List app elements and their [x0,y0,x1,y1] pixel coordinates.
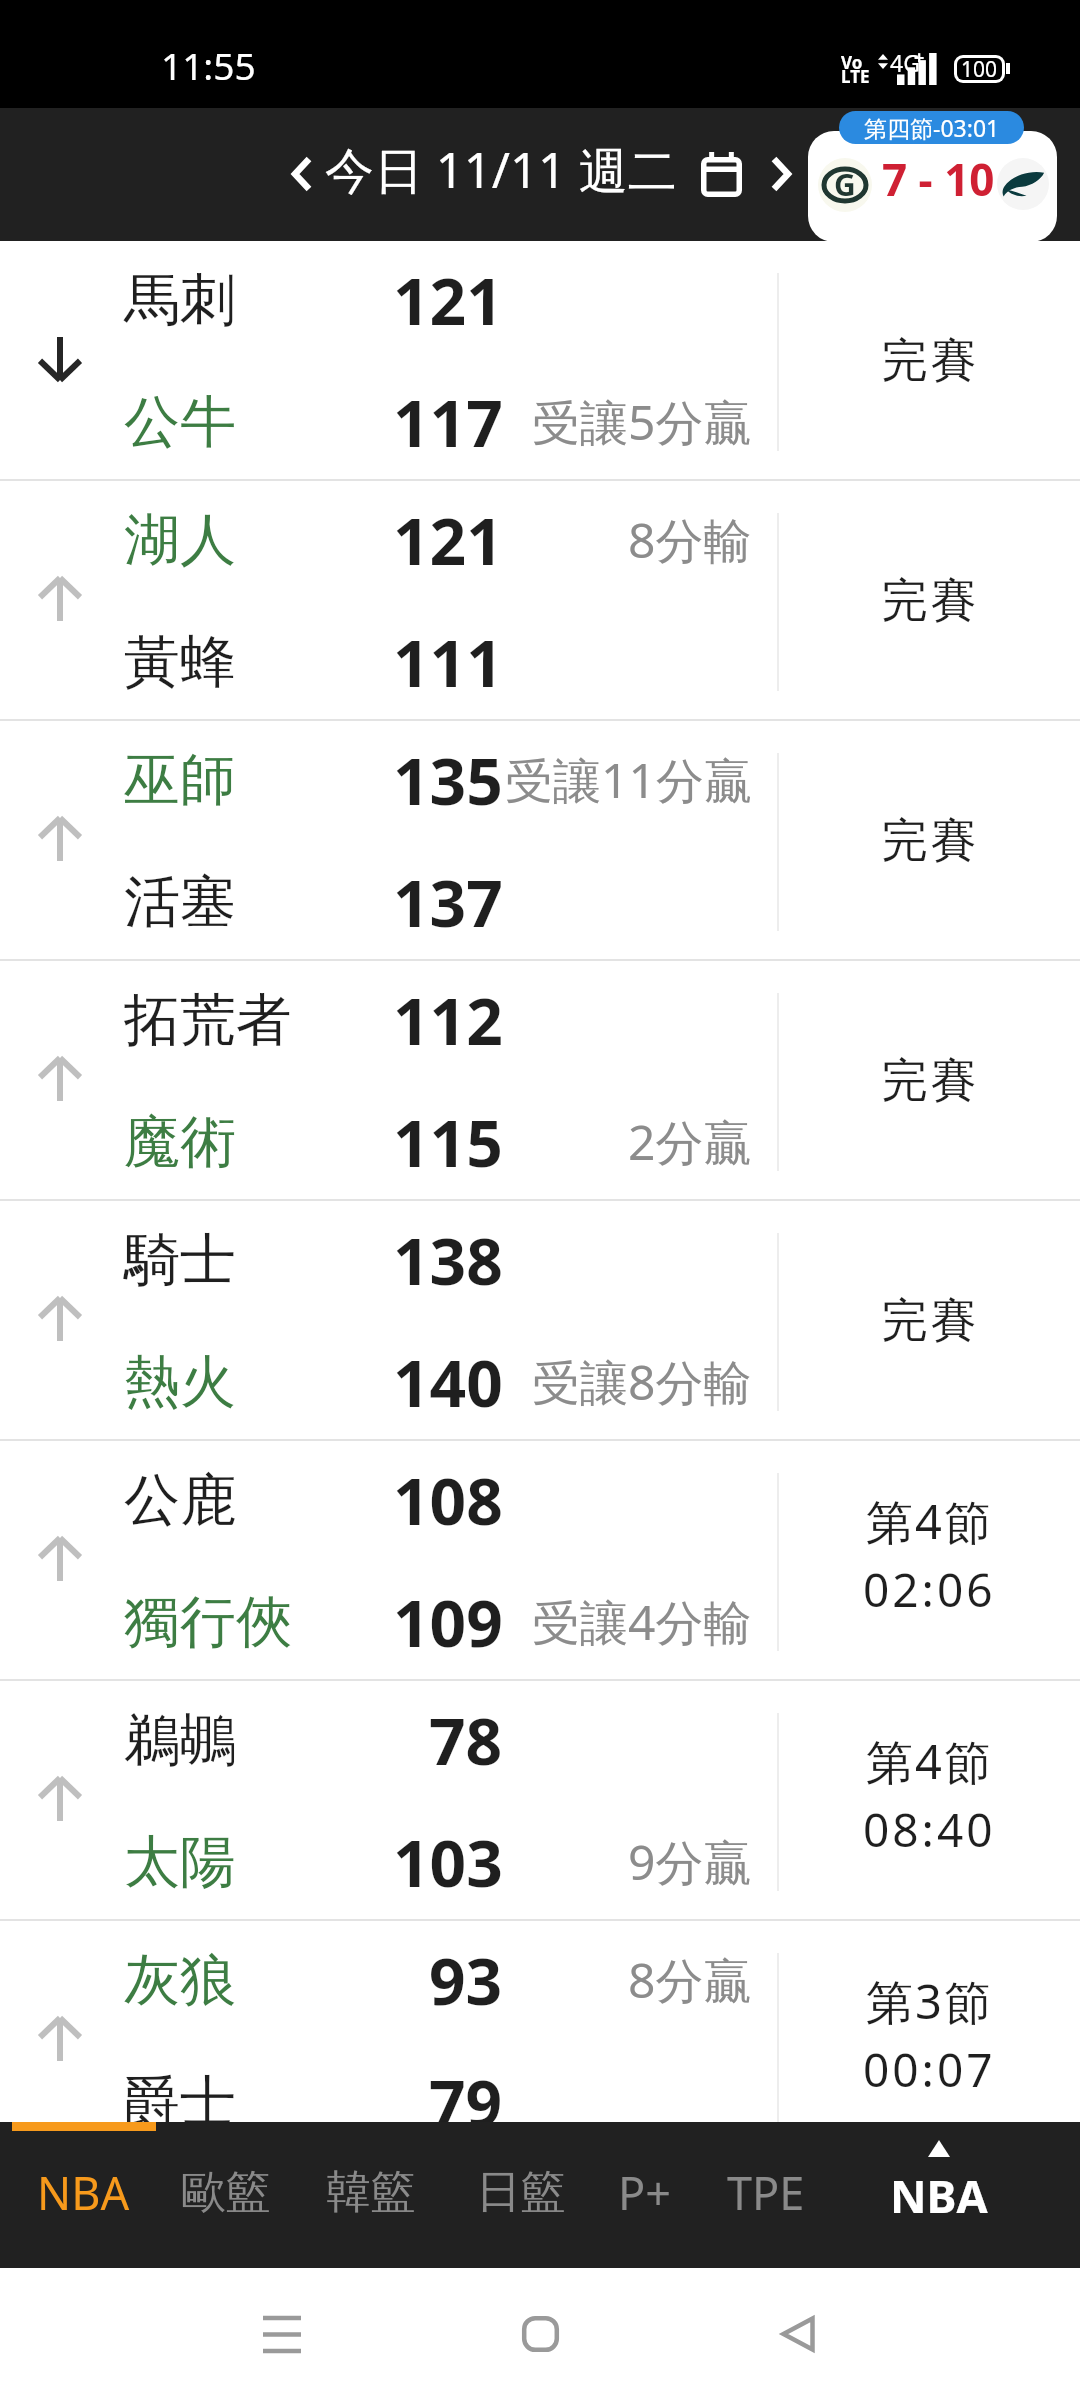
staticText: 湖人 [124,505,236,576]
staticText: 黃蜂 [124,627,236,698]
staticText: 完賽 [880,572,978,630]
staticText: NBA [37,2162,130,2223]
staticText: 8分贏 [628,1947,752,2013]
staticText: 騎士 [124,1225,236,1296]
staticText: 103 [393,1819,503,1895]
button[interactable]: NBA [8,2124,158,2261]
staticText: 第四節-03:01 [864,112,1000,143]
button[interactable]: 公鹿 [0,1441,1080,1679]
staticText: 歐籃 [181,2164,271,2221]
staticText: 受讓5分贏 [532,389,752,455]
staticText: 02:06 [863,1558,996,1621]
button[interactable]: G [808,111,1057,242]
staticText: 93 [429,1937,503,2013]
button[interactable]: Previous day [278,134,326,214]
staticText: 熱火 [124,1347,236,1418]
staticText: LTE [841,65,870,88]
button[interactable]: 馬刺 [0,241,1080,479]
staticText: 爵士 [124,2067,236,2122]
button[interactable]: TPE [701,2124,831,2261]
staticText: 140 [393,1339,503,1415]
staticText: 111 [393,619,503,695]
staticText: 100 [961,58,998,80]
staticText: 受讓8分輸 [532,1349,752,1415]
staticText: 7 - 10 [882,149,995,209]
button[interactable]: 日籃 [451,2124,591,2261]
staticText: 拓荒者 [124,985,292,1056]
staticText: 8分輸 [628,507,752,573]
button[interactable]: 灰狼 [0,1921,1080,2122]
staticText: 138 [393,1217,503,1293]
staticText: 受讓11分贏 [505,747,752,813]
button[interactable]: 拓荒者 [0,961,1080,1199]
staticText: 108 [393,1457,503,1533]
staticText: 巫師 [124,745,236,816]
staticText: 121 [393,497,503,573]
staticText: P+ [618,2162,671,2223]
button[interactable]: 韓籃 [301,2124,441,2261]
staticText: 78 [429,1697,503,1773]
button[interactable]: 鵜鶘 [0,1681,1080,1919]
button[interactable]: 湖人 [0,481,1080,719]
staticText: 112 [393,977,503,1053]
staticText: 11:55 [161,40,256,90]
staticText: Vo [841,51,863,74]
staticText: TPE [727,2162,805,2223]
staticText: 121 [393,257,503,333]
staticText: 79 [429,2059,503,2122]
button[interactable]: Back [738,2274,858,2394]
staticText: 9分贏 [628,1829,752,1895]
staticText: 活塞 [124,867,236,938]
staticText: 第4節 [866,1489,993,1553]
button[interactable]: 歐籃 [156,2124,296,2261]
staticText: + [914,45,925,70]
staticText: 第4節 [866,1729,993,1793]
staticText: 115 [393,1099,503,1175]
staticText: 公牛 [124,387,236,458]
button[interactable]: Home [480,2274,600,2394]
staticText: 公鹿 [124,1465,236,1536]
staticText: 日籃 [476,2164,566,2221]
staticText: 馬刺 [124,265,236,336]
staticText: 4G [890,47,920,78]
staticText: 完賽 [880,1052,978,1110]
staticText: NBA [890,2165,988,2226]
button[interactable]: 巫師 [0,721,1080,959]
staticText: 第3節 [866,1969,993,2033]
button[interactable]: 騎士 [0,1201,1080,1439]
staticText: 韓籃 [326,2164,416,2221]
button[interactable]: NBA [849,2131,1029,2268]
staticText: 受讓4分輸 [532,1589,752,1655]
staticText: 鵜鶘 [124,1705,236,1776]
staticText: 今日 11/11 週二 [325,136,677,203]
staticText: 2分贏 [628,1109,752,1175]
button[interactable]: Next day [757,134,805,214]
button[interactable]: Recent apps [222,2274,342,2394]
staticText: 魔術 [124,1107,236,1178]
button[interactable]: Open calendar [686,134,756,214]
staticText: 135 [393,737,503,813]
staticText: 08:40 [863,1798,996,1861]
staticText: G [834,164,856,205]
staticText: 太陽 [124,1827,236,1898]
staticText: 完賽 [880,812,978,870]
staticText: 獨行俠 [124,1587,292,1658]
button[interactable]: P+ [584,2124,704,2261]
staticText: 137 [393,859,503,935]
staticText: 完賽 [880,1292,978,1350]
staticText: 完賽 [880,332,978,390]
staticText: 灰狼 [124,1945,236,2016]
staticText: 109 [393,1579,503,1655]
staticText: 00:07 [863,2038,996,2101]
staticText: 117 [393,379,503,455]
